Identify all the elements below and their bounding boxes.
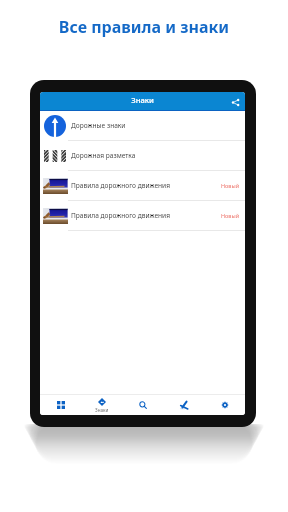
staticText: Все правила и знаки [0,16,288,38]
button[interactable]: Правила дорожного движения [40,171,245,201]
button[interactable]: Settings [204,395,245,415]
staticText: Новый [221,212,240,219]
staticText: Дорожные знаки [71,121,245,130]
staticText: Новый [221,182,240,189]
button[interactable]: Apps [40,395,81,415]
staticText: Правила дорожного движения [71,181,221,190]
button[interactable]: Знаки [81,395,122,415]
staticText: Знаки [95,407,109,413]
button[interactable]: Дорожная разметка [40,141,245,171]
button[interactable]: Правила дорожного движения [40,201,245,231]
button[interactable]: Rules [163,395,204,415]
staticText: Правила дорожного движения [71,211,221,220]
button[interactable]: Share [228,95,242,109]
button[interactable]: Дорожные знаки [40,111,245,141]
button[interactable]: Search [122,395,163,415]
staticText: Дорожная разметка [71,151,245,160]
staticText: Знаки [131,95,154,105]
